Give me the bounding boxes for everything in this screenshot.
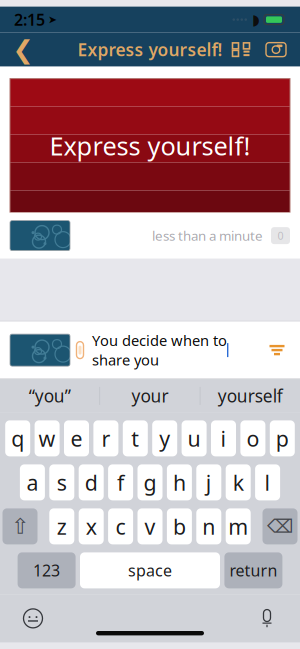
button[interactable]: s xyxy=(49,464,74,500)
button[interactable]: 123 xyxy=(18,552,76,588)
button[interactable]: c xyxy=(108,508,133,544)
staticText: “you” xyxy=(29,384,71,407)
button[interactable]: Express yourself! xyxy=(0,67,300,213)
staticText: p xyxy=(276,424,289,452)
button[interactable]: Attach xyxy=(70,335,90,365)
staticText: o xyxy=(246,424,259,452)
staticText: Express yourself! xyxy=(77,38,222,61)
button[interactable]: r xyxy=(93,420,118,456)
staticText: e xyxy=(70,424,82,452)
button[interactable]: Delete xyxy=(262,508,297,544)
button[interactable]: space xyxy=(80,552,220,588)
staticText: s xyxy=(57,468,67,496)
button[interactable]: your xyxy=(100,379,200,412)
button[interactable]: Back xyxy=(6,33,40,67)
button[interactable]: return xyxy=(224,552,282,588)
staticText: c xyxy=(116,512,126,540)
button[interactable]: yourself xyxy=(201,379,300,412)
staticText: r xyxy=(101,424,110,452)
button[interactable]: e xyxy=(64,420,89,456)
button[interactable]: p xyxy=(270,420,295,456)
button[interactable]: z xyxy=(49,508,74,544)
staticText: ➤ xyxy=(45,14,57,26)
button[interactable]: Shift xyxy=(2,508,37,544)
button[interactable]: m xyxy=(226,508,251,544)
staticText: ◗ xyxy=(252,11,260,28)
staticText: ⇧ xyxy=(11,514,29,538)
button[interactable]: i xyxy=(211,420,236,456)
staticText: less than a minute xyxy=(152,227,263,244)
button[interactable]: v xyxy=(137,508,162,544)
button[interactable]: g xyxy=(137,464,162,500)
staticText: yourself xyxy=(218,384,283,407)
staticText: x xyxy=(86,512,97,540)
staticText: z xyxy=(57,512,67,540)
staticText: f xyxy=(117,468,124,496)
staticText: 0 xyxy=(277,228,283,243)
button[interactable]: h xyxy=(167,464,192,500)
staticText: space xyxy=(128,560,172,581)
button[interactable]: a xyxy=(20,464,45,500)
button[interactable]: t xyxy=(123,420,148,456)
button[interactable]: k xyxy=(226,464,251,500)
button[interactable]: Send xyxy=(264,337,290,363)
button[interactable]: n xyxy=(196,508,221,544)
staticText: l xyxy=(265,468,271,496)
button[interactable]: o xyxy=(240,420,265,456)
staticText: t xyxy=(131,424,139,452)
button[interactable]: y xyxy=(152,420,177,456)
button[interactable]: Dictation xyxy=(252,603,282,633)
staticText: return xyxy=(229,560,277,581)
staticText: a xyxy=(26,468,38,496)
button[interactable]: “you” xyxy=(0,379,99,412)
staticText: y xyxy=(159,424,170,452)
staticText: k xyxy=(233,468,244,496)
staticText: ❮ xyxy=(12,35,33,64)
button[interactable]: d xyxy=(79,464,104,500)
staticText: ⌫ xyxy=(267,516,293,537)
button[interactable]: j xyxy=(196,464,221,500)
staticText: q xyxy=(11,424,24,452)
button[interactable]: Scan code xyxy=(224,33,258,67)
staticText: You decide when to share you xyxy=(92,331,227,370)
staticText: g xyxy=(143,468,156,496)
staticText: v xyxy=(144,512,155,540)
staticText: Express yourself! xyxy=(49,129,250,162)
button[interactable]: u xyxy=(182,420,207,456)
button[interactable]: Emoji keyboard xyxy=(18,603,48,633)
staticText: u xyxy=(188,424,201,452)
staticText: 2:15 xyxy=(14,9,45,30)
staticText: j xyxy=(206,468,212,496)
staticText: 123 xyxy=(33,560,60,581)
button[interactable]: f xyxy=(108,464,133,500)
button[interactable]: b xyxy=(167,508,192,544)
button[interactable]: l xyxy=(255,464,280,500)
staticText: h xyxy=(173,468,186,496)
staticText: m xyxy=(228,512,248,540)
button[interactable]: Camera xyxy=(258,33,294,67)
staticText: your xyxy=(131,384,168,407)
button[interactable]: x xyxy=(79,508,104,544)
staticText: n xyxy=(202,512,215,540)
staticText: b xyxy=(173,512,186,540)
button[interactable]: q xyxy=(5,420,30,456)
staticText: d xyxy=(85,468,98,496)
button[interactable]: w xyxy=(35,420,60,456)
staticText: w xyxy=(39,424,56,452)
staticText: i xyxy=(220,424,226,452)
